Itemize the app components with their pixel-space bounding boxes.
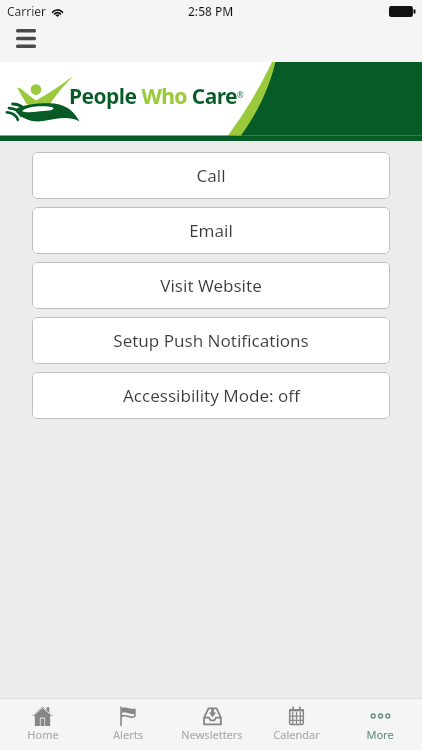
button[interactable]: Email [32,207,390,254]
staticText: Newsletters [181,727,243,742]
button[interactable]: Call [32,152,390,199]
staticText: Setup Push Notifications [113,329,309,352]
button[interactable]: Home [0,699,85,750]
staticText: Call [196,164,226,187]
staticText: 2:58 PM [188,3,234,19]
staticText: Carrier [7,3,47,19]
staticText: Home [27,727,59,742]
button[interactable]: Alerts [85,699,170,750]
staticText: More [366,727,394,742]
button[interactable]: Calendar [254,699,338,750]
button[interactable]: Visit Website [32,262,390,309]
staticText: Calendar [273,727,320,742]
button[interactable]: Accessibility Mode: off [32,372,390,419]
button[interactable]: Menu [3,22,48,54]
staticText: People Who Care® [69,82,244,111]
staticText: Email [189,219,233,242]
staticText: Alerts [113,727,143,742]
button[interactable]: Setup Push Notifications [32,317,390,364]
staticText: Visit Website [160,274,262,297]
staticText: Accessibility Mode: off [123,384,300,407]
button[interactable]: More [338,699,422,750]
button[interactable]: Newsletters [170,699,254,750]
